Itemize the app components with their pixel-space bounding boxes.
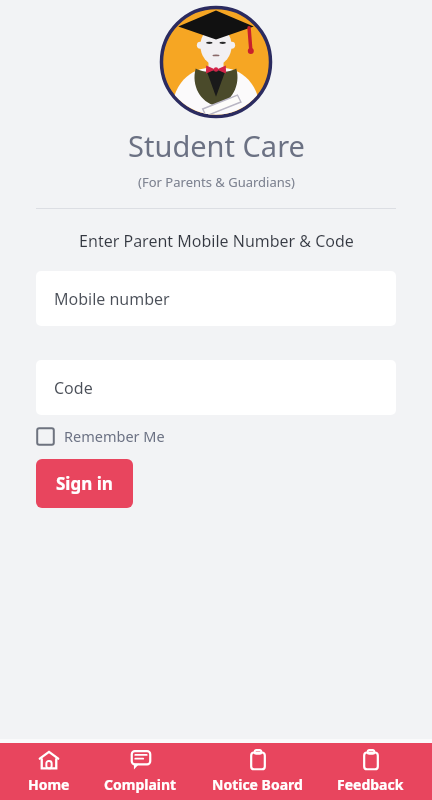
button[interactable]: Feedback	[331, 746, 410, 797]
staticText: Student Care	[128, 126, 305, 165]
button[interactable]: Sign in	[36, 459, 133, 508]
staticText: Remember Me	[64, 426, 165, 446]
button[interactable]: Complaint	[98, 746, 183, 797]
button[interactable]: Code	[36, 360, 396, 415]
button[interactable]: Home	[22, 746, 76, 797]
staticText: Mobile number	[54, 288, 170, 310]
staticText: Home	[28, 775, 70, 794]
button[interactable]: Mobile number	[36, 271, 396, 326]
staticText: Enter Parent Mobile Number & Code	[79, 230, 354, 252]
button[interactable]: Remember Me	[36, 424, 165, 448]
button[interactable]: Notice Board	[206, 746, 309, 797]
staticText: Notice Board	[212, 775, 303, 794]
staticText: Feedback	[337, 775, 404, 794]
staticText: Sign in	[56, 472, 113, 495]
staticText: Complaint	[104, 775, 177, 794]
staticText: Code	[54, 377, 93, 399]
staticText: (For Parents & Guardians)	[138, 173, 295, 191]
